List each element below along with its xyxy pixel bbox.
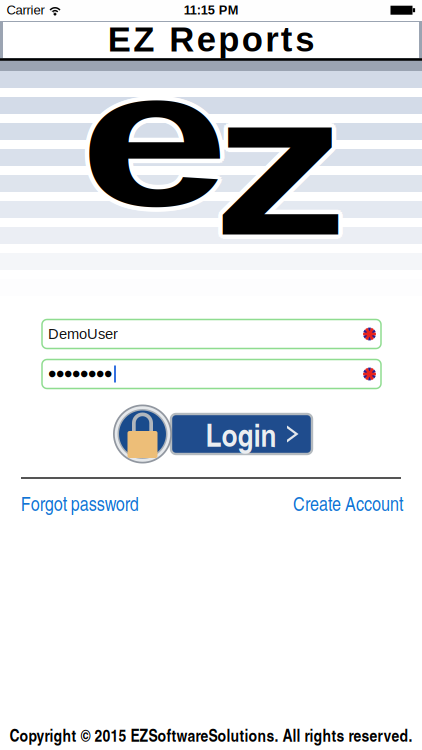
button[interactable]: DemoUser [42, 319, 381, 348]
staticText: z [231, 47, 332, 273]
staticText: EZ Reports [108, 20, 314, 59]
staticText: e [101, 27, 209, 245]
staticText: e [96, 31, 204, 249]
staticText: e [95, 29, 203, 247]
button[interactable]: Create Account [293, 489, 403, 517]
staticText: z [225, 51, 326, 277]
staticText: z [233, 49, 334, 275]
staticText: DemoUser [48, 326, 118, 342]
staticText: e [97, 25, 205, 243]
staticText: e [102, 30, 210, 247]
staticText: z [231, 49, 332, 276]
staticText: e [99, 27, 207, 244]
staticText: e [102, 33, 210, 250]
staticText: z [227, 50, 328, 277]
staticText: z [228, 53, 329, 280]
staticText: e [97, 33, 205, 250]
staticText: z [231, 55, 332, 281]
staticText: z [229, 51, 330, 277]
staticText: z [227, 55, 328, 281]
staticText: z [231, 50, 332, 277]
staticText: e [99, 31, 207, 249]
staticText: e [102, 25, 210, 243]
staticText: z [227, 53, 328, 279]
staticText: z [229, 46, 330, 273]
staticText: z [234, 51, 335, 277]
staticText: e [100, 31, 208, 249]
staticText: e [102, 28, 210, 246]
staticText: e [104, 27, 212, 244]
staticText: Forgot password [21, 489, 139, 517]
staticText: e [104, 29, 212, 247]
staticText: Copyright © 2015 EZSoftwareSolutions. Al… [9, 723, 412, 747]
staticText: z [231, 53, 332, 279]
staticText: e [100, 29, 208, 247]
staticText: z [225, 49, 326, 275]
staticText: e [101, 31, 209, 248]
staticText: e [98, 31, 206, 248]
staticText: Login [205, 411, 276, 457]
staticText: Carrier [6, 3, 44, 17]
staticText: z [227, 49, 328, 276]
staticText: e [97, 30, 205, 247]
staticText: z [231, 52, 332, 278]
staticText: •••••••• [48, 361, 112, 387]
staticText: z [227, 52, 328, 278]
staticText: e [98, 27, 206, 245]
staticText: z [227, 47, 328, 273]
staticText: e [100, 27, 208, 244]
staticText: z [230, 53, 331, 280]
staticText: z [225, 53, 326, 280]
staticText: z [233, 53, 334, 280]
staticText: z [230, 49, 331, 275]
staticText: e [100, 25, 208, 242]
staticText: z [229, 55, 330, 282]
button[interactable]: Forgot password [21, 489, 139, 517]
button[interactable]: Login [113, 403, 312, 464]
staticText: e [104, 31, 212, 249]
staticText: e [97, 28, 205, 246]
staticText: 11:15 PM [184, 3, 239, 17]
staticText: Create Account [293, 489, 403, 517]
staticText: e [100, 34, 208, 251]
button[interactable]: •••••••• [42, 359, 381, 388]
staticText: z [228, 49, 329, 275]
staticText: e [96, 27, 204, 244]
